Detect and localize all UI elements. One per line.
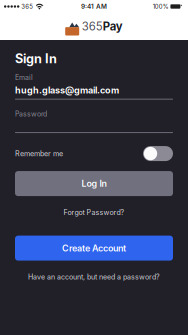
staticText: 9:41 AM — [81, 3, 107, 10]
staticText: 365 — [82, 20, 103, 33]
button[interactable]: Have an account, but need a password? — [15, 273, 173, 281]
button[interactable]: Remember me — [143, 146, 173, 161]
button[interactable]: Forgot Password? — [15, 208, 173, 217]
staticText: Email — [15, 73, 33, 82]
staticText: Remember me — [15, 149, 63, 158]
staticText: Sign In — [15, 51, 57, 66]
staticText: Forgot Password? — [63, 208, 124, 217]
staticText: 365 — [21, 3, 33, 10]
button[interactable]: Create Account — [15, 236, 173, 261]
staticText: Password — [15, 110, 47, 118]
staticText: hugh.glass@gmail.com — [15, 85, 119, 96]
button[interactable]: Log In — [15, 171, 173, 196]
staticText: Have an account, but need a password? — [28, 273, 160, 281]
staticText: 100% — [153, 3, 169, 10]
staticText: Create Account — [62, 243, 126, 253]
staticText: Log In — [81, 178, 106, 189]
staticText: Pay — [103, 20, 123, 33]
